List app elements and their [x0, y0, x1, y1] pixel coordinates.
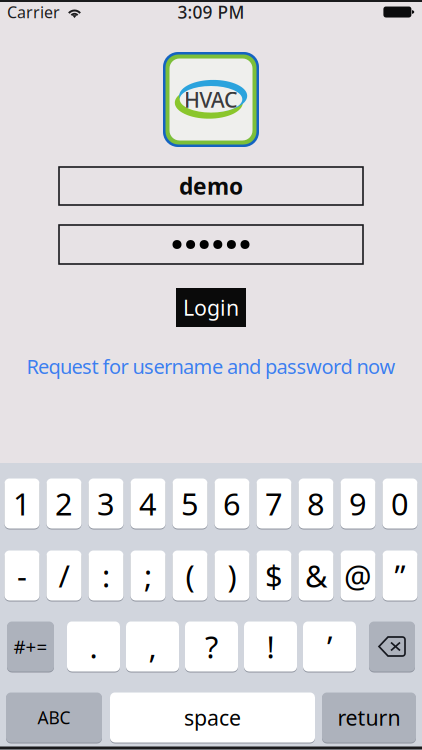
staticText: ’	[327, 626, 332, 667]
button[interactable]: 0	[382, 478, 417, 528]
staticText: 1	[13, 483, 31, 524]
staticText: 3:09 PM	[177, 0, 244, 23]
button[interactable]: 5	[172, 478, 207, 528]
button[interactable]: 4	[130, 478, 165, 528]
button[interactable]: ;	[130, 550, 165, 600]
staticText: Carrier	[7, 1, 60, 23]
button[interactable]: -	[4, 550, 39, 600]
staticText: 5	[181, 483, 199, 524]
staticText: Login	[183, 293, 239, 322]
staticText: 6	[223, 483, 241, 524]
staticText: -	[17, 555, 27, 596]
button[interactable]: Login	[176, 288, 246, 327]
staticText: .	[89, 626, 97, 667]
staticText: 8	[307, 483, 325, 524]
staticText: 3	[97, 483, 115, 524]
staticText: 2	[55, 483, 73, 524]
staticText: demo	[179, 171, 243, 201]
staticText: #+=	[13, 634, 47, 659]
staticText: $	[265, 555, 283, 596]
button[interactable]	[59, 225, 363, 264]
staticText: (	[185, 555, 194, 596]
staticText: &	[305, 555, 327, 596]
button[interactable]: 6	[214, 478, 249, 528]
button[interactable]: !	[244, 621, 297, 671]
button[interactable]: demo	[59, 167, 363, 205]
button[interactable]: @	[340, 550, 375, 600]
staticText: return	[337, 703, 400, 732]
staticText: 0	[391, 483, 409, 524]
button[interactable]: 9	[340, 478, 375, 528]
staticText: 7	[265, 483, 283, 524]
staticText: HVAC	[184, 85, 238, 114]
staticText: ?	[205, 626, 218, 667]
staticText: ;	[144, 555, 152, 596]
staticText: )	[227, 555, 236, 596]
button[interactable]: 3	[88, 478, 123, 528]
button[interactable]: Delete	[369, 621, 415, 671]
button[interactable]: 2	[46, 478, 81, 528]
button[interactable]: return	[322, 692, 416, 742]
button[interactable]: 7	[256, 478, 291, 528]
staticText: Request for username and password now	[26, 353, 395, 380]
staticText: ”	[394, 555, 405, 596]
button[interactable]: ”	[382, 550, 417, 600]
button[interactable]: ,	[126, 621, 179, 671]
button[interactable]: ?	[185, 621, 238, 671]
button[interactable]: (	[172, 550, 207, 600]
button[interactable]: 1	[4, 478, 39, 528]
staticText: 4	[139, 483, 157, 524]
staticText: :	[102, 555, 110, 596]
staticText: !	[266, 626, 274, 667]
button[interactable]: 8	[298, 478, 333, 528]
button[interactable]: .	[67, 621, 120, 671]
button[interactable]: )	[214, 550, 249, 600]
staticText: /	[58, 555, 69, 596]
button[interactable]: /	[46, 550, 81, 600]
staticText: 9	[349, 483, 367, 524]
staticText: space	[184, 703, 241, 732]
button[interactable]: $	[256, 550, 291, 600]
staticText: ABC	[37, 706, 70, 729]
button[interactable]: Request for username and password now	[26, 353, 395, 380]
button[interactable]: #+=	[7, 621, 54, 671]
button[interactable]: :	[88, 550, 123, 600]
button[interactable]: &	[298, 550, 333, 600]
button[interactable]: space	[110, 692, 315, 742]
button[interactable]: ’	[303, 621, 356, 671]
button[interactable]: ABC	[6, 692, 102, 742]
staticText: ,	[148, 626, 156, 667]
staticText: @	[344, 555, 372, 596]
